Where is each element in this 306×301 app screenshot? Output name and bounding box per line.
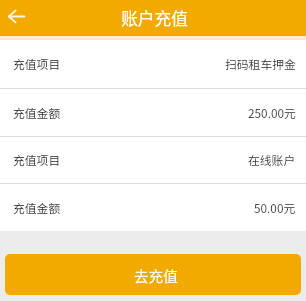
staticText: 扫码租车押金: [225, 55, 296, 72]
staticText: 充值金额: [13, 104, 61, 121]
button[interactable]: 充值项目: [0, 40, 306, 88]
button[interactable]: 充值金额: [0, 184, 306, 231]
button[interactable]: 充值项目: [0, 137, 306, 183]
button[interactable]: Back: [0, 2, 32, 34]
staticText: 250.00元: [248, 104, 296, 121]
staticText: 充值金额: [13, 199, 61, 216]
staticText: 充值项目: [13, 151, 61, 168]
button[interactable]: 去充值: [5, 254, 301, 295]
staticText: 在线账户: [248, 151, 296, 168]
button[interactable]: 充值金额: [0, 89, 306, 136]
staticText: 去充值: [134, 265, 178, 286]
staticText: 50.00元: [254, 199, 296, 216]
staticText: 充值项目: [13, 55, 61, 72]
staticText: 账户充值: [121, 6, 188, 30]
